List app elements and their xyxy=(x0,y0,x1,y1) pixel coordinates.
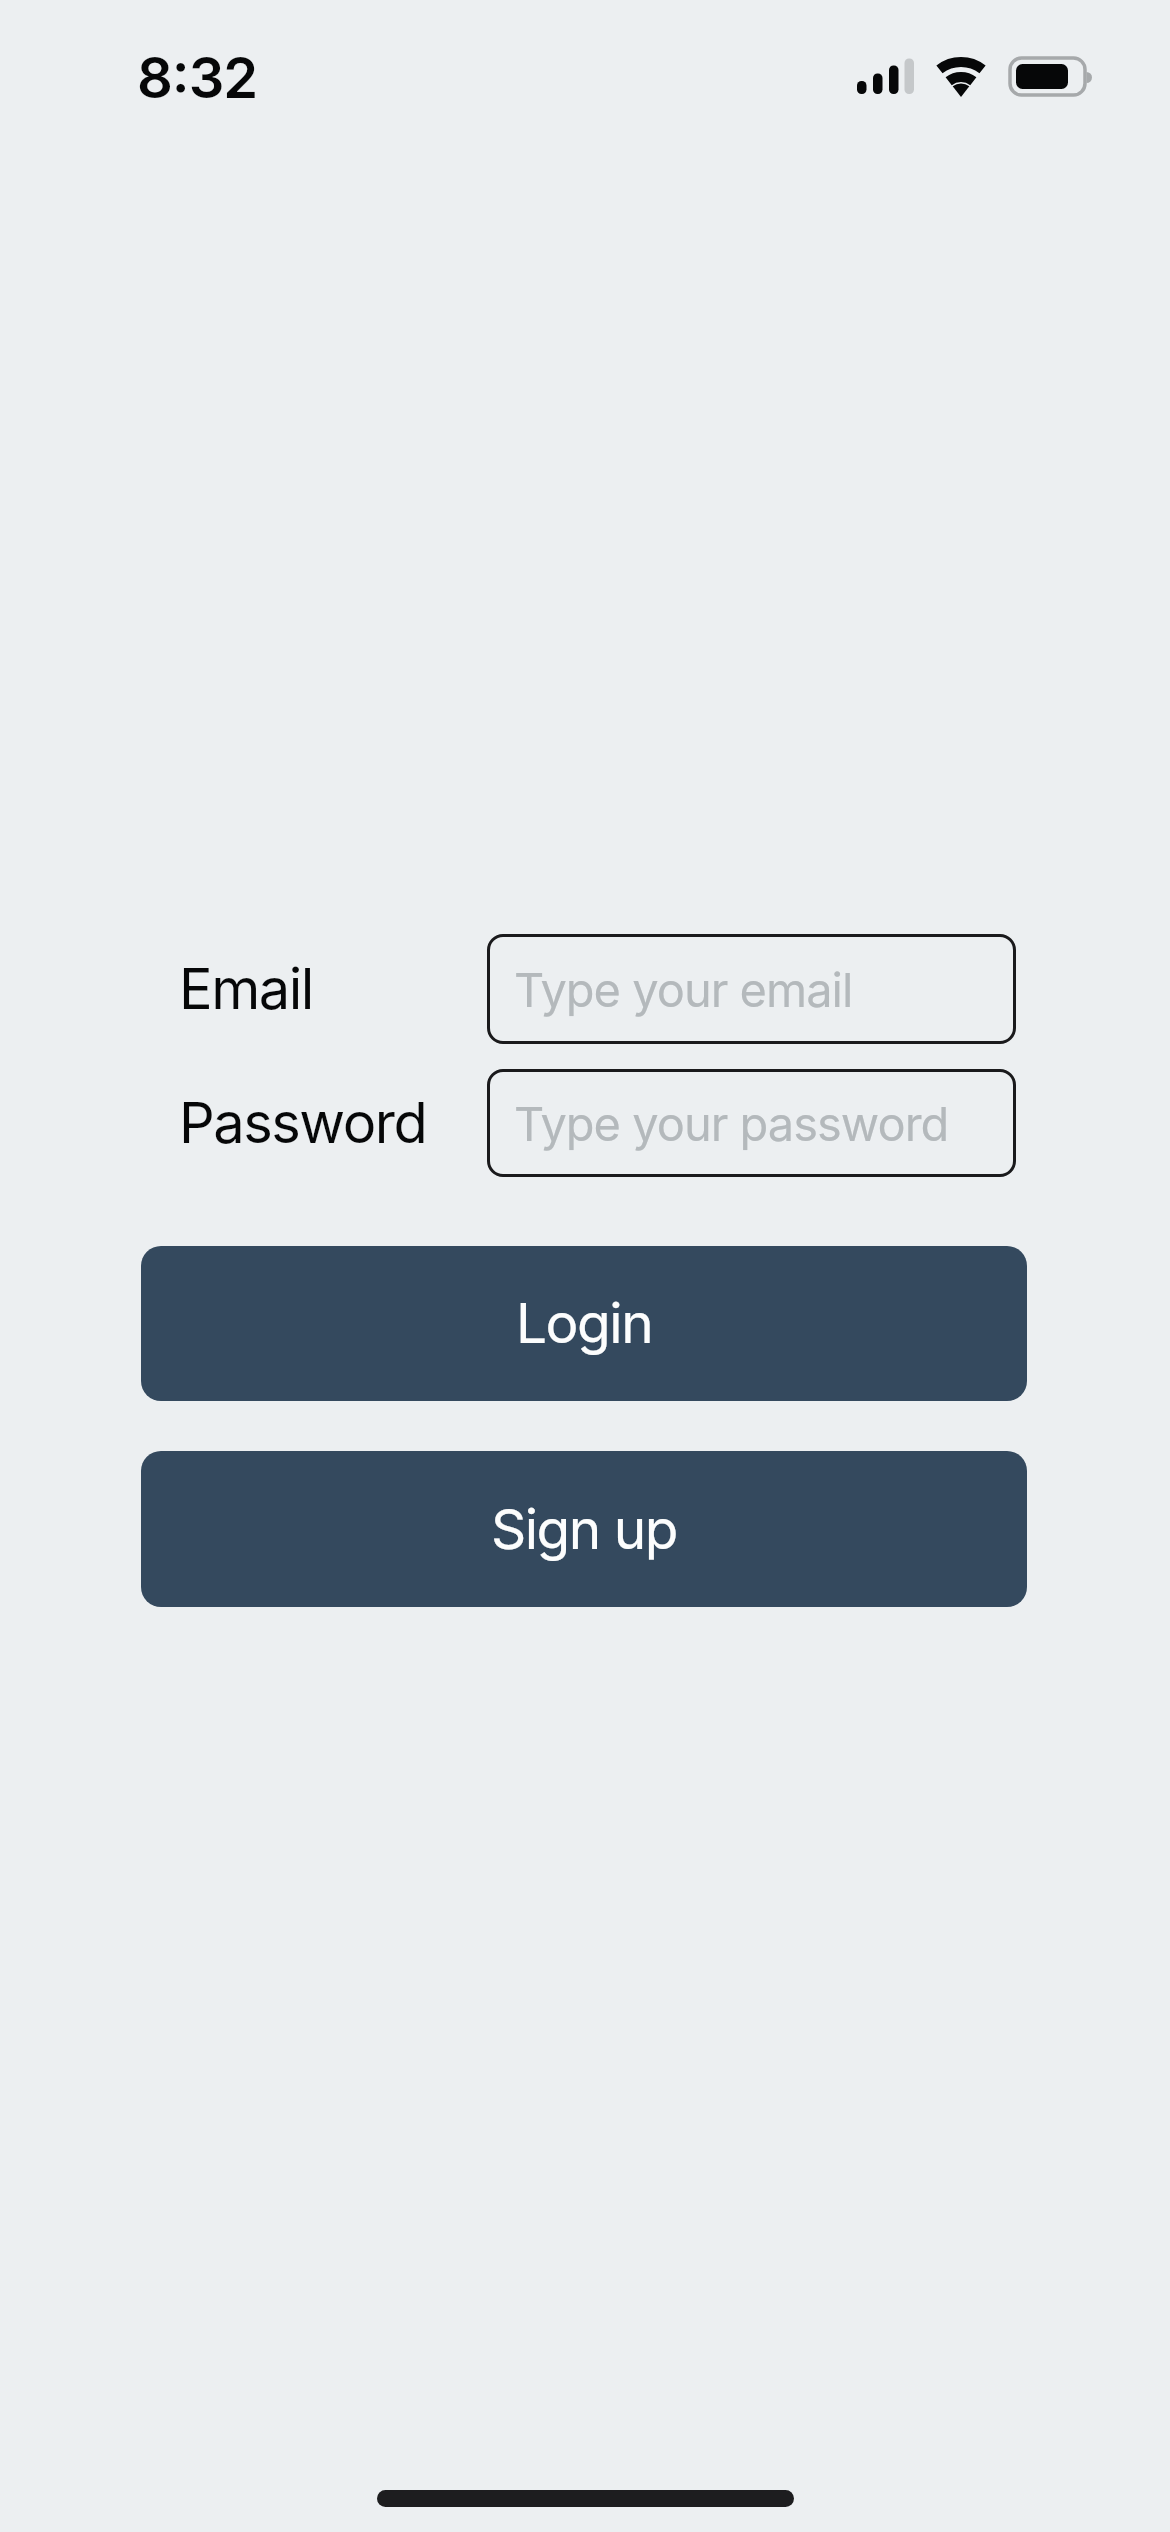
button[interactable]: Type your email xyxy=(487,934,1016,1044)
button[interactable]: Type your password xyxy=(487,1069,1016,1177)
button[interactable]: Sign up xyxy=(141,1451,1027,1607)
staticText: Type your password xyxy=(514,1095,949,1152)
button[interactable]: Login xyxy=(141,1246,1027,1401)
staticText: Type your email xyxy=(514,961,853,1018)
staticText: Login xyxy=(516,1290,653,1357)
staticText: Password xyxy=(179,1089,427,1157)
staticText: Email xyxy=(179,955,313,1023)
staticText: Sign up xyxy=(491,1496,678,1563)
staticText: 8:32 xyxy=(137,44,258,112)
